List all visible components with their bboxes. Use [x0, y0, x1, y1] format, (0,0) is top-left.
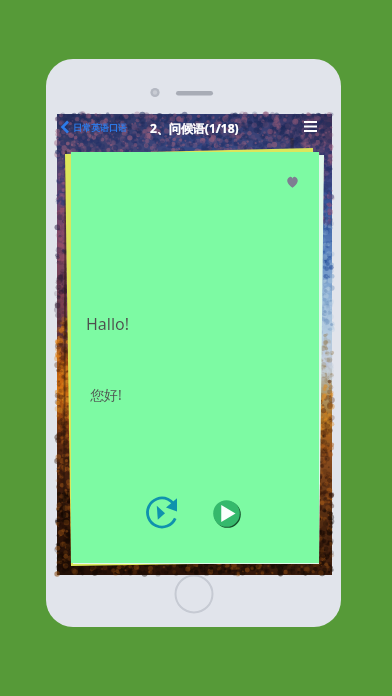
staticText: 2、问候语(1/18) [150, 120, 239, 136]
button[interactable]: Menu [295, 112, 325, 140]
button[interactable]: Play [212, 499, 241, 528]
button[interactable]: Replay [144, 494, 180, 530]
button[interactable]: 日常英语口语 [58, 113, 130, 141]
staticText: 您好! [90, 385, 122, 404]
button[interactable]: Favorite [280, 170, 304, 194]
staticText: 日常英语口语 [73, 122, 127, 133]
staticText: Hallo! [86, 313, 130, 335]
